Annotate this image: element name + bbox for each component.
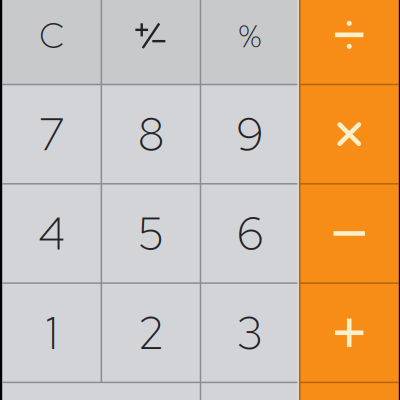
button[interactable]: 4	[2, 184, 101, 283]
button[interactable]: Equals	[300, 382, 399, 400]
button[interactable]: Plus	[300, 283, 399, 382]
button[interactable]: Divide	[300, 0, 399, 84]
staticText: 1	[46, 303, 58, 363]
button[interactable]: Clear	[2, 0, 101, 84]
staticText: 8	[137, 104, 164, 164]
button[interactable]: Plus minus	[101, 0, 201, 84]
button[interactable]: 1	[2, 283, 101, 382]
staticText: 9	[236, 104, 264, 164]
button[interactable]: 2	[101, 283, 201, 382]
button[interactable]: Decimal point	[200, 382, 300, 400]
button[interactable]: 7	[2, 84, 101, 184]
staticText: 4	[38, 203, 65, 263]
button[interactable]: Multiply	[300, 84, 399, 184]
button[interactable]: 5	[101, 184, 201, 283]
staticText: 6	[237, 203, 264, 263]
staticText: %	[239, 15, 262, 57]
button[interactable]: 3	[200, 283, 300, 382]
button[interactable]: 6	[200, 184, 300, 283]
button[interactable]: Percent	[200, 0, 300, 84]
staticText: 2	[137, 303, 164, 363]
button[interactable]: 9	[200, 84, 300, 184]
staticText: C	[39, 13, 64, 59]
button[interactable]: Minus	[300, 184, 399, 283]
staticText: 5	[137, 203, 164, 263]
button[interactable]: 8	[101, 84, 201, 184]
button[interactable]: 0	[2, 382, 200, 400]
staticText: 3	[237, 303, 264, 363]
staticText: 7	[38, 104, 65, 164]
